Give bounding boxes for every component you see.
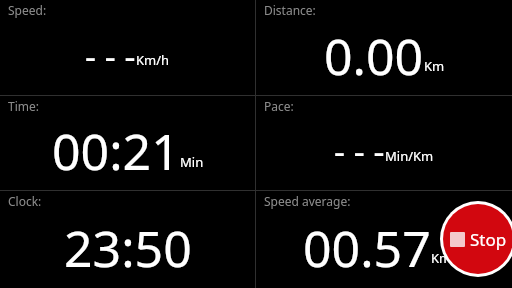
button[interactable]: Stop bbox=[443, 204, 512, 274]
staticText: Km bbox=[424, 57, 445, 75]
button[interactable]: Distance: bbox=[256, 0, 512, 95]
staticText: - - - bbox=[334, 128, 385, 174]
staticText: 00:21 bbox=[52, 117, 180, 185]
staticText: Km/h bbox=[431, 249, 465, 267]
staticText: Distance: bbox=[264, 2, 316, 18]
button[interactable]: Clock: bbox=[0, 191, 255, 288]
staticText: Speed: bbox=[8, 2, 47, 18]
staticText: Km/h bbox=[136, 51, 170, 69]
button[interactable]: Pace: bbox=[256, 96, 512, 190]
staticText: Min bbox=[180, 153, 204, 171]
staticText: Stop bbox=[470, 228, 507, 251]
staticText: 0.00 bbox=[324, 22, 424, 90]
staticText: Clock: bbox=[8, 193, 42, 209]
staticText: - - - bbox=[85, 33, 136, 79]
button[interactable]: Speed average: bbox=[256, 191, 512, 288]
button[interactable]: Time: bbox=[0, 96, 255, 190]
staticText: Time: bbox=[8, 98, 39, 114]
staticText: Pace: bbox=[264, 98, 294, 114]
staticText: Min/Km bbox=[385, 147, 434, 165]
staticText: Speed average: bbox=[264, 193, 351, 209]
staticText: 00.57 bbox=[303, 214, 431, 282]
staticText: 23:50 bbox=[64, 214, 192, 282]
button[interactable]: Speed: bbox=[0, 0, 255, 95]
